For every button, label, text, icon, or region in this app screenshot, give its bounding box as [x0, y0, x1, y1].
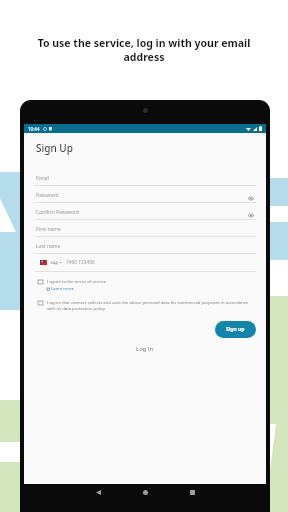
button[interactable]: +44: [34, 254, 256, 272]
button[interactable]: Last name: [34, 237, 256, 254]
staticText: Confirm Password: [36, 209, 79, 216]
button[interactable]: Confirm Password: [34, 203, 256, 220]
staticText: Log in: [136, 345, 154, 353]
other: Show password: [248, 196, 254, 201]
button[interactable]: I agree that connect collects and uses t…: [34, 298, 256, 314]
staticText: +44: [50, 260, 58, 266]
staticText: To use the service, log in with your ema…: [16, 36, 272, 64]
button[interactable]: Email: [34, 169, 256, 186]
button[interactable]: First name: [34, 220, 256, 237]
button[interactable]: Password: [34, 186, 256, 203]
staticText: First name: [36, 226, 61, 233]
staticText: Last name: [36, 243, 61, 250]
staticText: Sign up: [226, 326, 245, 333]
button[interactable]: Back: [96, 490, 101, 495]
staticText: Email: [36, 175, 49, 182]
staticText: I agree to the terms of service: [47, 279, 106, 285]
button[interactable]: Sign up: [215, 321, 256, 338]
staticText: 19:44: [28, 126, 40, 132]
button[interactable]: I agree to the terms of service: [34, 277, 256, 294]
other: Show password: [248, 213, 254, 218]
button[interactable]: Home: [143, 490, 148, 495]
staticText: Sign Up: [36, 141, 73, 155]
button[interactable]: Log in: [34, 343, 256, 355]
staticText: I agree that connect collects and uses t…: [47, 300, 256, 312]
staticText: 7400 123456: [66, 259, 95, 266]
staticText: Learn more: [51, 286, 74, 292]
staticText: Password: [36, 192, 59, 199]
